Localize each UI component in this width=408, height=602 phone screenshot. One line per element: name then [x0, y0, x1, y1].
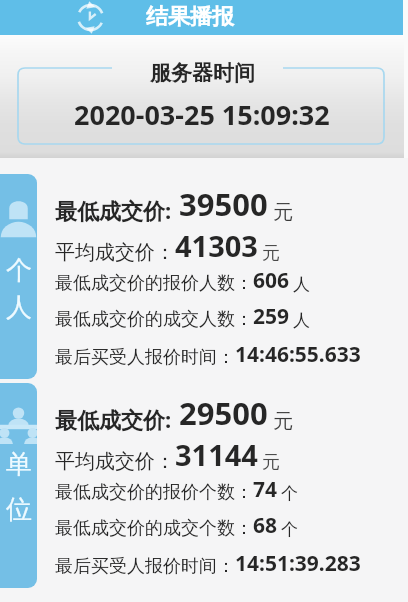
- staticText: 人: [6, 291, 32, 324]
- staticText: 2020-03-25 15:09:32: [74, 96, 330, 133]
- staticText: 单: [6, 448, 32, 481]
- staticText: 606: [253, 266, 290, 295]
- staticText: 人: [293, 310, 310, 331]
- staticText: 最后买受人报价时间：: [55, 555, 235, 578]
- staticText: 29500: [179, 392, 268, 434]
- staticText: 元: [262, 451, 280, 474]
- staticText: 平均成交价：: [55, 240, 175, 265]
- staticText: 个: [281, 519, 298, 540]
- staticText: 平均成交价：: [55, 449, 175, 474]
- button[interactable]: 个人: [0, 174, 37, 379]
- staticText: 14:51:39.283: [235, 549, 361, 578]
- staticText: 服务器时间: [150, 60, 255, 86]
- staticText: 74: [253, 475, 278, 504]
- staticText: 最后买受人报价时间：: [55, 346, 235, 369]
- staticText: 最低成交价:: [55, 404, 172, 434]
- staticText: 最低成交价的成交人数：: [55, 308, 253, 331]
- staticText: 位: [6, 493, 32, 526]
- staticText: 元: [262, 242, 280, 265]
- staticText: 最低成交价的成交个数：: [55, 517, 253, 540]
- staticText: 元: [273, 200, 293, 225]
- staticText: 结果播报: [146, 3, 234, 31]
- staticText: 最低成交价的报价人数：: [55, 272, 253, 295]
- staticText: 个: [281, 483, 298, 504]
- staticText: 259: [253, 302, 290, 331]
- button[interactable]: 单位: [0, 383, 37, 588]
- staticText: 元: [273, 409, 293, 434]
- staticText: 14:46:55.633: [235, 340, 361, 369]
- staticText: 最低成交价:: [55, 195, 172, 225]
- staticText: 39500: [179, 183, 268, 225]
- button[interactable]: Refresh: [75, 2, 106, 33]
- staticText: 最低成交价的报价个数：: [55, 481, 253, 504]
- staticText: 个: [6, 254, 32, 287]
- staticText: 人: [293, 274, 310, 295]
- staticText: 68: [253, 511, 278, 540]
- staticText: 31144: [175, 435, 258, 474]
- staticText: 41303: [175, 226, 258, 265]
